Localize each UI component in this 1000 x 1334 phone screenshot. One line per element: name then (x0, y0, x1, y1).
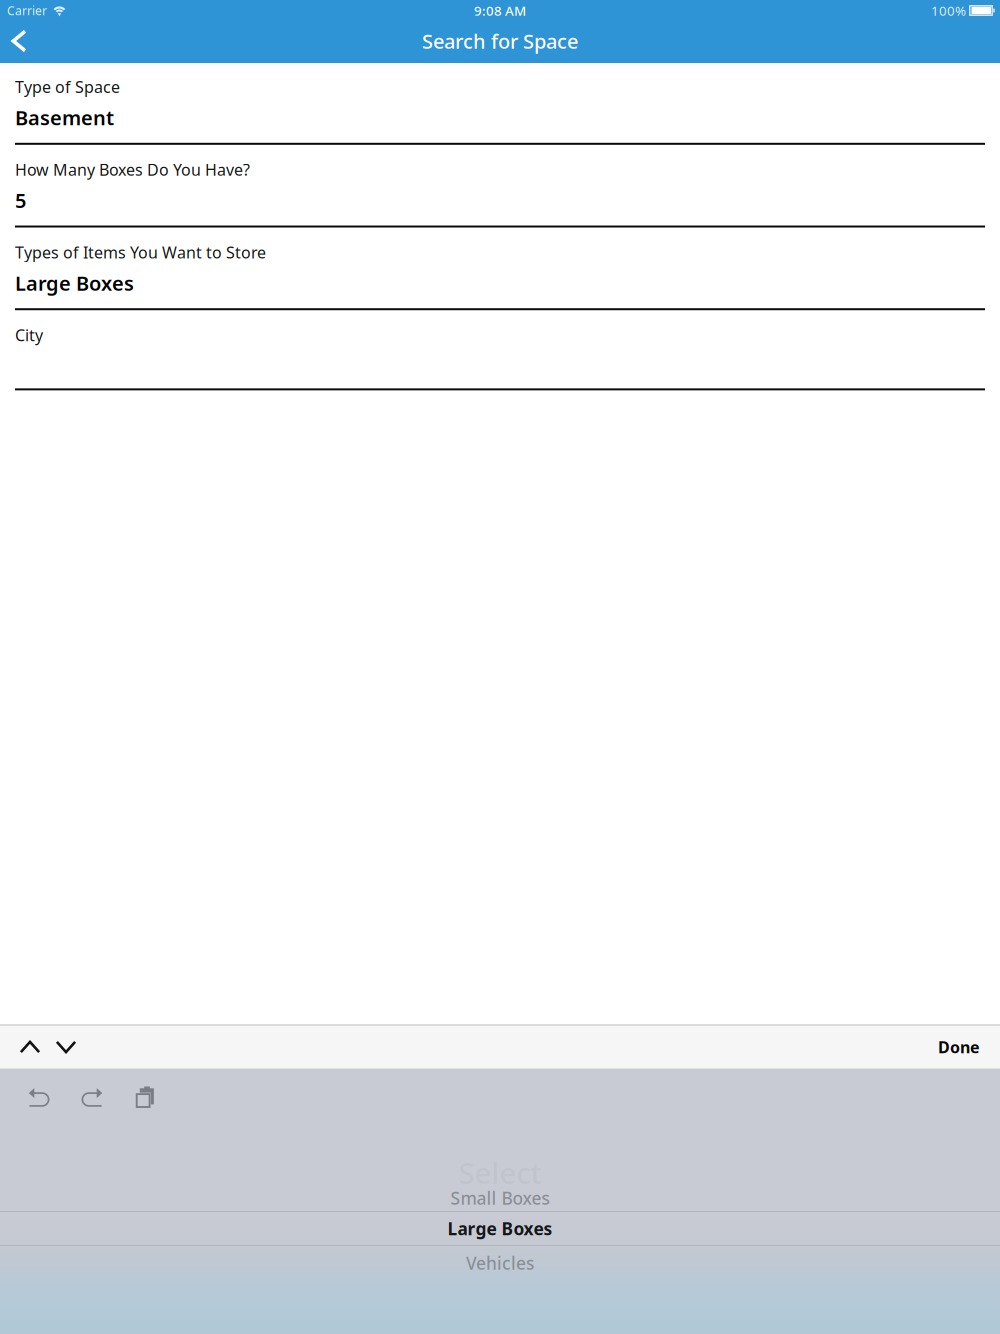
button[interactable]: Done (928, 1027, 990, 1067)
button[interactable]: Next field (48, 1027, 84, 1067)
staticText: 5 (15, 187, 26, 214)
staticText: How Many Boxes Do You Have? (15, 159, 250, 180)
staticText: Types of Items You Want to Store (15, 242, 266, 263)
staticText: Vehicles (466, 1251, 534, 1274)
staticText: Large Boxes (15, 270, 134, 296)
button[interactable]: Previous field (12, 1027, 48, 1067)
staticText: Type of Space (15, 76, 120, 97)
staticText: Large Boxes (447, 1217, 552, 1240)
staticText: Carrier (7, 2, 47, 18)
staticText: 100% (931, 2, 966, 19)
staticText: Done (938, 1036, 980, 1058)
staticText: Basement (15, 104, 114, 131)
staticText: Select (458, 1153, 541, 1192)
button[interactable]: Back (0, 21, 41, 61)
staticText: 9:08 AM (474, 2, 526, 19)
staticText: Search for Space (422, 28, 578, 54)
button[interactable]: Paste (128, 1081, 162, 1113)
staticText: City (15, 324, 43, 345)
staticText: Small Boxes (450, 1186, 549, 1209)
button[interactable]: Undo (22, 1081, 56, 1113)
button[interactable]: Redo (75, 1081, 109, 1113)
